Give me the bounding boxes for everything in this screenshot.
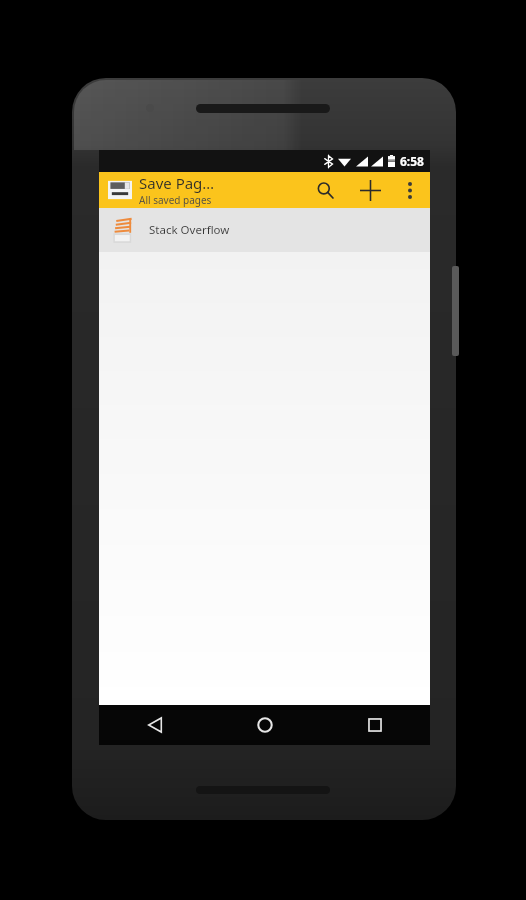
button[interactable]: Search [304, 172, 346, 208]
button[interactable]: Back [99, 705, 210, 745]
button[interactable]: Add page [346, 172, 394, 208]
button[interactable]: Stack Overflow [99, 208, 430, 252]
button[interactable]: Home [210, 705, 320, 745]
staticText: 6:58 [400, 153, 424, 169]
button[interactable]: More options [394, 172, 426, 208]
staticText: All saved pages [139, 193, 212, 207]
button[interactable]: Recent apps [320, 705, 430, 745]
staticText: Save Pages Of… [139, 173, 221, 193]
staticText: Stack Overflow [149, 222, 230, 238]
